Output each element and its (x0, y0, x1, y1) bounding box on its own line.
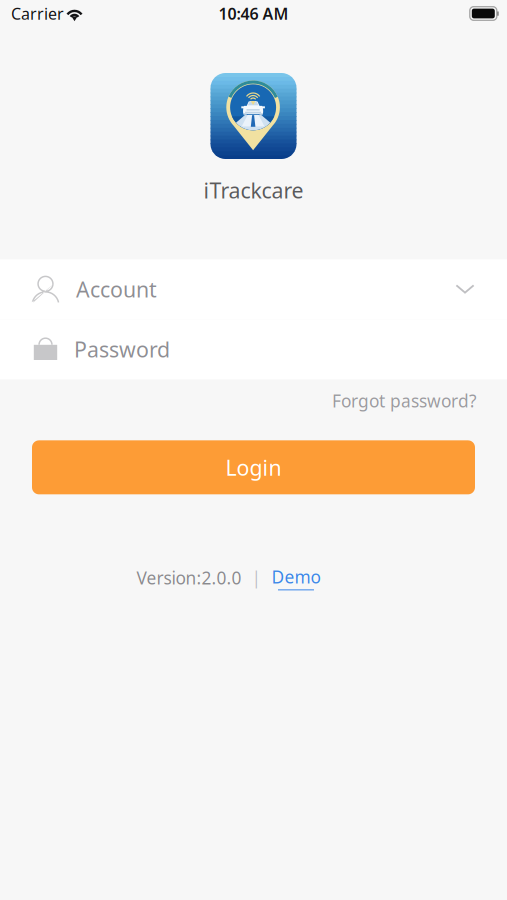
staticText: Account (76, 275, 157, 303)
staticText: Password (74, 335, 170, 363)
button[interactable]: Forgot password? (332, 385, 477, 416)
staticText: Carrier (11, 3, 64, 24)
staticText: Demo (271, 565, 320, 588)
staticText: | (241, 566, 271, 589)
staticText: Version:2.0.0 (136, 566, 241, 589)
staticText: Forgot password? (332, 389, 477, 412)
staticText: 10:46 AM (218, 3, 288, 24)
button[interactable]: Account (0, 259, 507, 319)
staticText: iTrackcare (203, 176, 303, 204)
button[interactable]: Login (32, 440, 475, 494)
staticText: Login (225, 453, 281, 481)
button[interactable]: Demo (271, 565, 320, 590)
button[interactable]: Password (0, 319, 507, 379)
